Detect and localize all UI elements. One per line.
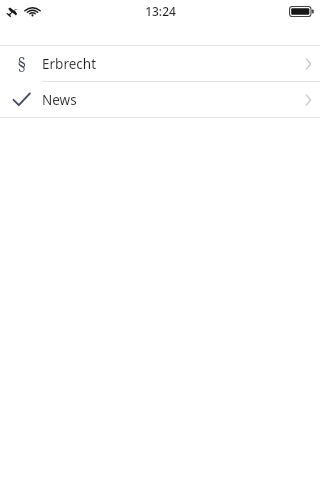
button[interactable]: News [0,82,320,117]
staticText: 13:24 [145,3,176,19]
button[interactable]: § [0,46,320,81]
staticText: Erbrecht [42,55,96,73]
other: Airplane mode [6,5,19,18]
staticText: § [17,53,26,75]
other: Wi-Fi [26,5,39,18]
staticText: News [42,91,77,109]
other: Battery full [289,6,314,17]
